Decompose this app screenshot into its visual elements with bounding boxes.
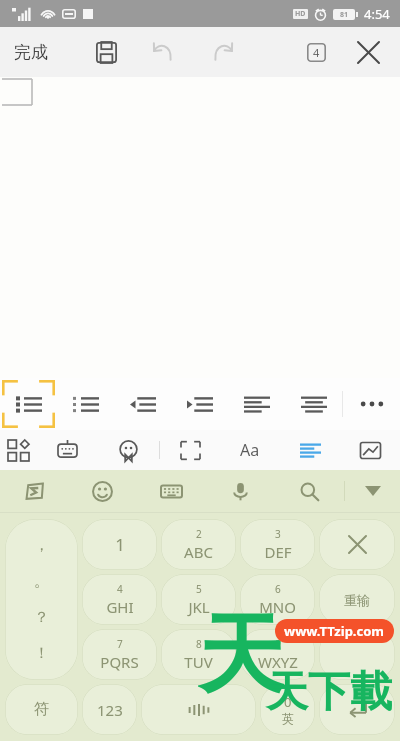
button[interactable]: Voice (206, 470, 275, 512)
staticText: HD (295, 9, 306, 19)
button[interactable]: Apps (0, 430, 37, 470)
button[interactable]: Aa (220, 430, 280, 470)
button[interactable]: Bullet list (0, 378, 57, 430)
staticText: 8 (196, 637, 202, 651)
button[interactable]: 符 (5, 684, 78, 735)
button[interactable]: Hide keyboard (345, 470, 400, 512)
staticText: TUV (184, 652, 213, 672)
button[interactable]: Sogou (0, 470, 68, 512)
button[interactable]: Indent (171, 378, 228, 430)
staticText: Aa (240, 439, 260, 461)
button[interactable]: 5 (161, 574, 236, 625)
button[interactable]: Crop (160, 430, 220, 470)
staticText: 0 (284, 693, 292, 711)
staticText: www.TTzip.com (284, 622, 385, 640)
staticText: MNO (259, 597, 296, 617)
button[interactable]: 3 (240, 519, 315, 570)
button[interactable]: Toolbox (37, 430, 98, 470)
staticText: ABC (184, 542, 213, 562)
staticText: WXYZ (258, 652, 298, 672)
button[interactable]: ， (5, 519, 78, 680)
staticText: 123 (97, 700, 123, 720)
staticText: JKL (188, 597, 210, 617)
button[interactable]: Emoji (98, 430, 159, 470)
button[interactable]: Emoji (68, 470, 137, 512)
button[interactable]: 4 (82, 574, 157, 625)
button[interactable]: 重输 (319, 574, 395, 625)
button[interactable]: 完成 (0, 27, 62, 77)
button[interactable] (319, 684, 395, 735)
button[interactable]: Align center (285, 378, 342, 430)
button[interactable]: 7 (82, 629, 157, 680)
button[interactable]: 9 (240, 629, 315, 680)
staticText: 2 (196, 527, 202, 541)
staticText: PQRS (100, 652, 139, 672)
button[interactable]: 2 (161, 519, 236, 570)
staticText: 4:54 (364, 5, 390, 23)
button[interactable]: 1 (82, 519, 157, 570)
staticText: GHI (106, 597, 134, 617)
staticText: 5 (196, 582, 202, 596)
staticText: DEF (264, 542, 292, 562)
button[interactable]: Pages (294, 30, 338, 74)
staticText: 完成 (14, 42, 48, 63)
staticText: ？ (34, 608, 49, 627)
staticText: 重输 (344, 592, 370, 608)
button[interactable]: More (343, 378, 400, 430)
button[interactable]: Keyboard (137, 470, 206, 512)
button[interactable]: Close (344, 28, 392, 76)
button[interactable]: Align left (228, 378, 285, 430)
button[interactable] (319, 629, 395, 680)
button[interactable]: 0 (260, 684, 315, 735)
button[interactable]: 6 (240, 574, 315, 625)
staticText: 。 (34, 572, 49, 591)
staticText: 1 (115, 533, 125, 556)
staticText: 9 (275, 637, 281, 651)
button[interactable]: Search (275, 470, 344, 512)
staticText: 6 (275, 582, 281, 596)
button[interactable]: 123 (82, 684, 137, 735)
staticText: 3 (275, 527, 281, 541)
staticText: 天下載 (266, 666, 392, 719)
staticText: ！ (34, 644, 49, 663)
staticText: 4 (313, 45, 320, 60)
staticText: 4 (117, 582, 123, 596)
button[interactable]: Undo (142, 30, 186, 74)
button[interactable]: Save (84, 30, 128, 74)
button[interactable]: Numbered list (57, 378, 114, 430)
staticText: 英 (282, 711, 294, 726)
button[interactable]: Paragraph (280, 430, 340, 470)
button[interactable] (141, 684, 256, 735)
staticText: ， (34, 536, 49, 555)
button[interactable]: Redo (200, 30, 244, 74)
staticText: 符 (34, 700, 49, 719)
staticText: 天 (198, 601, 284, 705)
staticText: 81 (340, 10, 349, 20)
button[interactable] (319, 519, 395, 570)
button[interactable]: Outdent (114, 378, 171, 430)
button[interactable]: 8 (161, 629, 236, 680)
button[interactable]: Image (340, 430, 400, 470)
staticText: 7 (117, 637, 123, 651)
